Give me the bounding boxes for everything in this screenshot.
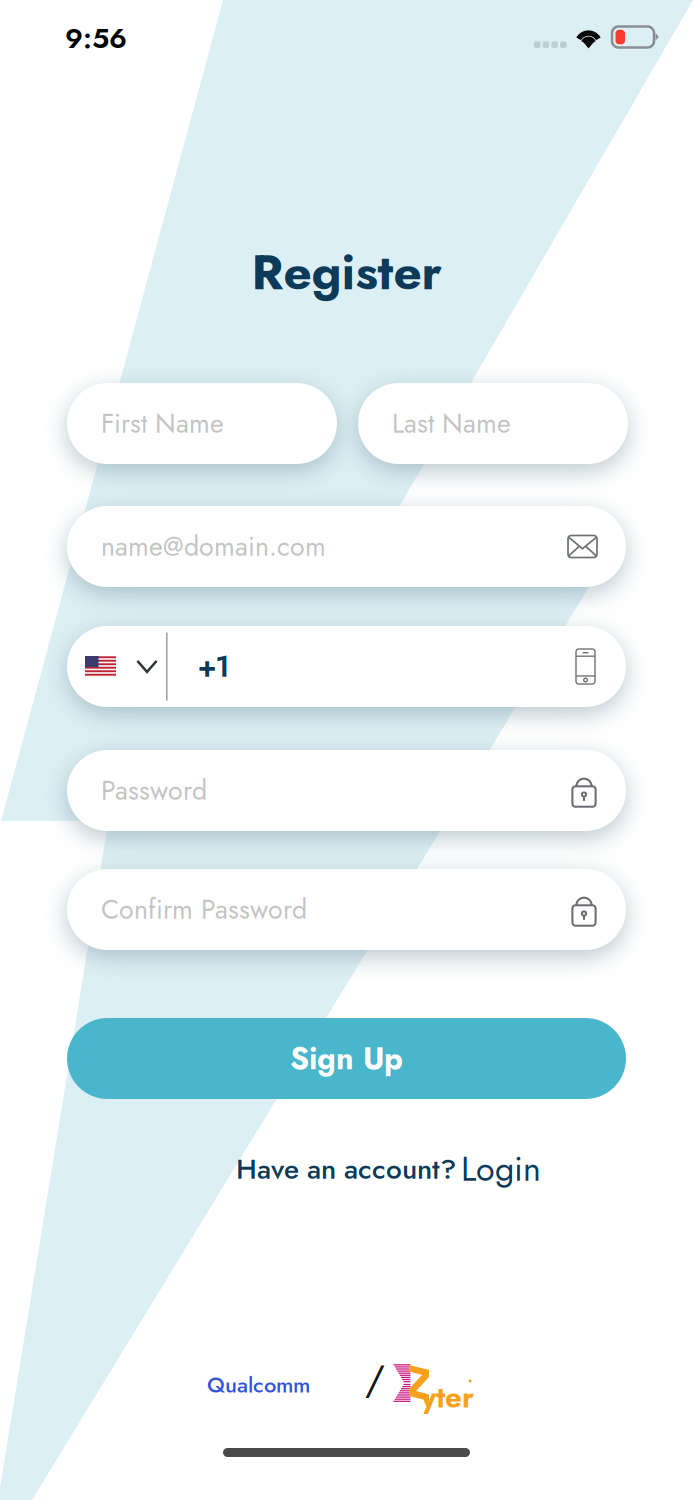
staticText: Password	[101, 771, 207, 810]
staticText: name@domain.com	[101, 527, 326, 566]
staticText: Last Name	[392, 404, 511, 443]
button[interactable]: Login	[461, 1149, 541, 1189]
staticText: Login	[461, 1144, 541, 1193]
staticText: Confirm Password	[101, 890, 307, 929]
staticText: yter	[421, 1376, 474, 1418]
staticText: Sign Up	[290, 1036, 403, 1081]
staticText: First Name	[101, 404, 224, 443]
staticText: Have an account?	[236, 1149, 456, 1189]
staticText: 9:56	[65, 18, 127, 58]
staticText: +1	[198, 645, 229, 688]
staticText: Register	[251, 236, 441, 308]
button[interactable]: Sign Up	[67, 1018, 626, 1099]
button[interactable]: Password	[67, 750, 626, 831]
staticText: Qualcomm	[207, 1369, 310, 1401]
staticText: /	[365, 1351, 385, 1407]
button[interactable]: First Name	[67, 383, 337, 464]
button[interactable]: Last Name	[358, 383, 628, 464]
button[interactable]: name@domain.com	[67, 506, 626, 587]
button[interactable]: Confirm Password	[67, 869, 626, 950]
button[interactable]: +1	[67, 626, 626, 707]
